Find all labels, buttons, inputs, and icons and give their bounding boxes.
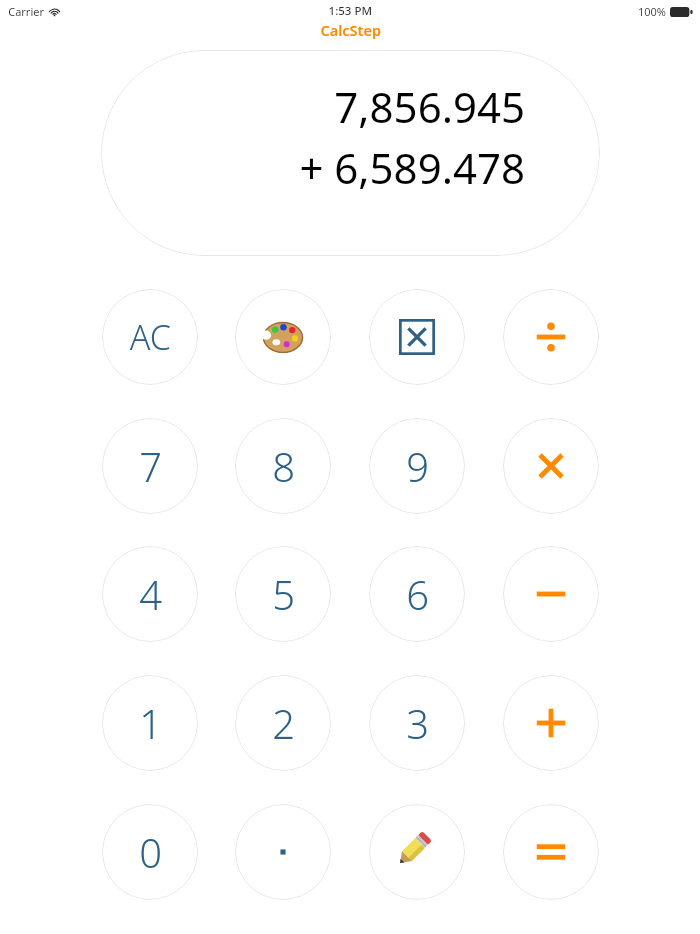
button[interactable]: Delete — [369, 289, 465, 385]
button[interactable]: 0 — [102, 804, 198, 900]
button[interactable]: 4 — [102, 546, 198, 642]
staticText: 3 — [406, 696, 429, 750]
button[interactable]: 1 — [102, 675, 198, 771]
staticText: 100% — [637, 4, 666, 19]
staticText: AC — [129, 314, 171, 360]
staticText: 1:53 PM — [328, 3, 372, 19]
button[interactable] — [235, 804, 331, 900]
button[interactable]: 5 — [235, 546, 331, 642]
staticText: 9 — [406, 439, 429, 493]
button[interactable]: 7,856.945 — [101, 50, 600, 256]
button[interactable]: Edit — [369, 804, 465, 900]
button[interactable]: 2 — [235, 675, 331, 771]
button[interactable]: 3 — [369, 675, 465, 771]
button[interactable]: Add — [503, 675, 599, 771]
button[interactable]: Theme — [235, 289, 331, 385]
staticText: Carrier — [8, 4, 44, 19]
staticText: + 6,589.478 — [299, 139, 525, 196]
button[interactable]: 6 — [369, 546, 465, 642]
button[interactable]: Divide — [503, 289, 599, 385]
staticText: 7,856.945 — [334, 78, 525, 135]
button[interactable]: Multiply — [503, 418, 599, 514]
button[interactable]: 9 — [369, 418, 465, 514]
staticText: 0 — [139, 825, 162, 879]
button[interactable]: AC — [102, 289, 198, 385]
staticText: 5 — [272, 567, 295, 621]
staticText: 8 — [272, 439, 295, 493]
staticText: 1 — [139, 696, 162, 750]
staticText: 2 — [272, 696, 295, 750]
button[interactable]: Subtract — [503, 546, 599, 642]
staticText: 7 — [139, 439, 162, 493]
button[interactable]: 7 — [102, 418, 198, 514]
button[interactable]: 8 — [235, 418, 331, 514]
staticText: 4 — [139, 567, 162, 621]
staticText: 6 — [406, 567, 429, 621]
button[interactable]: Equals — [503, 804, 599, 900]
staticText: CalcStep — [320, 20, 381, 40]
